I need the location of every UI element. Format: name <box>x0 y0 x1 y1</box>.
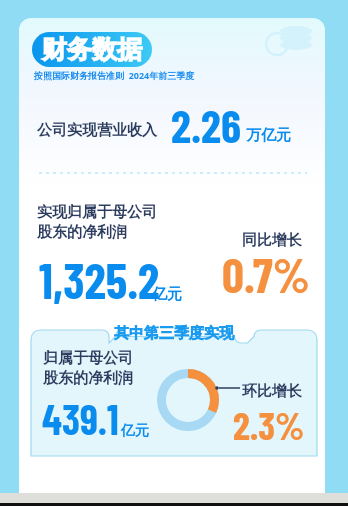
staticText: 439.1 <box>42 394 119 443</box>
staticText: 股东的净利润 <box>37 223 127 242</box>
staticText: 按照国际财务报告准则 2024年前三季度 <box>34 69 195 81</box>
staticText: 2.3% <box>233 402 305 448</box>
staticText: 公司实现营业收入 <box>37 121 157 140</box>
staticText: 实现归属于母公司 <box>37 203 157 222</box>
staticText: 财务数据 <box>42 34 142 65</box>
staticText: 亿元 <box>152 285 182 304</box>
staticText: 同比增长 <box>242 231 302 250</box>
staticText: 亿元 <box>121 422 149 440</box>
staticText: 1,325.2 <box>39 250 160 309</box>
staticText: 归属于母公司 <box>43 349 133 368</box>
staticText: 股东的净利润 <box>43 369 133 388</box>
staticText: 万亿元 <box>246 126 291 145</box>
staticText: 2.26 <box>171 98 241 152</box>
staticText: 环比增长 <box>242 382 302 401</box>
button[interactable]: 财务数据 <box>32 32 152 67</box>
staticText: 0.7% <box>222 245 310 303</box>
other: Finance <box>263 20 315 62</box>
staticText: 其中第三季度实现 <box>114 324 234 343</box>
